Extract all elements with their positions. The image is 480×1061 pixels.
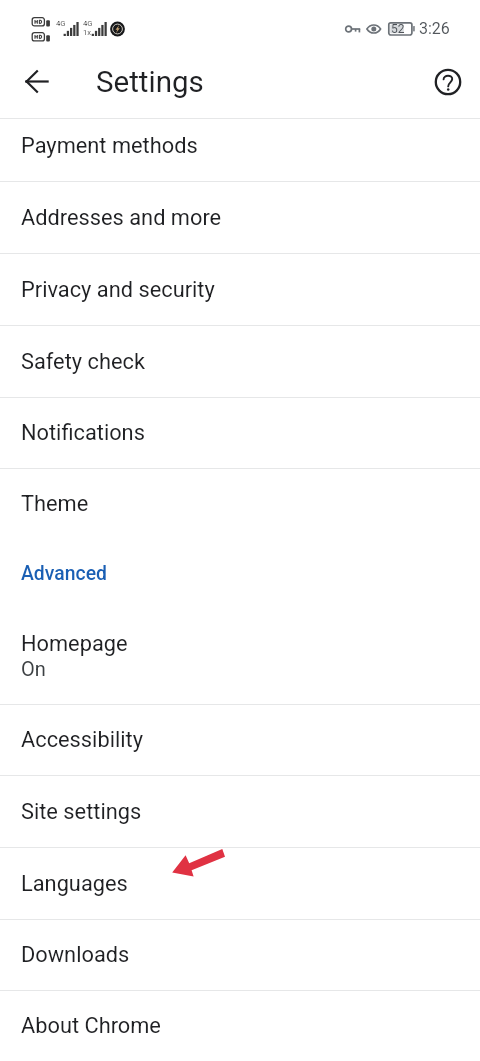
staticText: On [21, 657, 46, 680]
button[interactable]: Help [425, 59, 470, 104]
staticText: Languages [21, 871, 128, 897]
staticText: Notifications [21, 420, 145, 446]
staticText: 4G [56, 19, 66, 28]
staticText: Payment methods [21, 133, 198, 159]
button[interactable]: About Chrome [0, 991, 480, 1061]
staticText: 52 [391, 22, 405, 36]
button[interactable]: Addresses and more [0, 182, 480, 253]
staticText: About Chrome [21, 1013, 161, 1039]
button[interactable]: Accessibility [0, 705, 480, 775]
button[interactable]: Theme [0, 469, 480, 539]
button[interactable]: Downloads [0, 920, 480, 990]
staticText: Settings [96, 65, 204, 100]
button[interactable]: Site settings [0, 776, 480, 847]
staticText: Site settings [21, 799, 142, 825]
staticText: Safety check [21, 349, 145, 375]
staticText: 3:26 [419, 19, 450, 38]
staticText: Advanced [21, 562, 107, 585]
staticText: 4G [83, 19, 93, 28]
staticText: Addresses and more [21, 205, 222, 231]
staticText: 1x [83, 28, 92, 37]
button[interactable]: Notifications [0, 398, 480, 468]
staticText: Accessibility [21, 727, 143, 753]
button[interactable]: Back [13, 58, 61, 106]
button[interactable]: Safety check [0, 326, 480, 397]
staticText: Theme [21, 491, 89, 517]
button[interactable]: Privacy and security [0, 254, 480, 325]
button[interactable]: Homepage [0, 607, 480, 704]
staticText: Privacy and security [21, 277, 215, 303]
button[interactable]: Payment methods [0, 119, 480, 181]
button[interactable]: Advanced [0, 539, 480, 607]
staticText: Homepage [21, 631, 128, 657]
button[interactable]: Languages [0, 848, 480, 919]
staticText: Downloads [21, 942, 130, 968]
